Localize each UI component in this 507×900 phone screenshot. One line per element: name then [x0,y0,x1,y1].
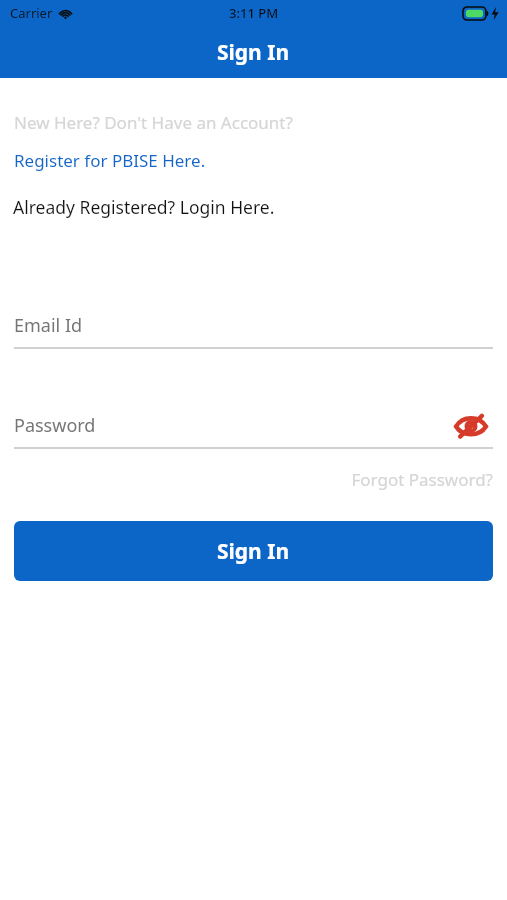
staticText: Carrier [10,4,53,22]
staticText: Email Id [14,313,83,338]
staticText: Password [14,413,96,438]
button[interactable]: Sign In [14,521,493,581]
button[interactable]: Show password [449,404,493,447]
staticText: 3:11 PM [229,4,279,22]
staticText: Sign In [217,38,290,67]
staticText: Sign In [217,537,290,566]
button[interactable]: Forgot Password? [0,468,493,491]
button[interactable]: Password [14,404,493,447]
button[interactable]: Already Registered? Login Here. [13,195,275,219]
button[interactable]: New Here? Don't Have an Account? [14,111,293,134]
button[interactable]: Email Id [14,304,493,347]
button[interactable]: Register for PBISE Here. [14,149,206,172]
